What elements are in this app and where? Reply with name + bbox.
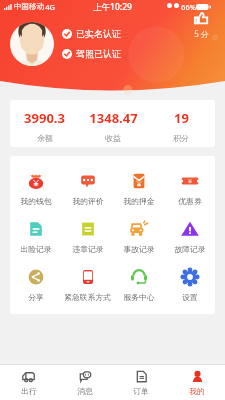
staticText: 分享 bbox=[28, 292, 44, 302]
button[interactable]: 分享 bbox=[10, 260, 62, 308]
button[interactable]: 评分 bbox=[194, 12, 209, 39]
button[interactable]: 1348.47 bbox=[79, 100, 147, 147]
staticText: 服务中心 bbox=[123, 292, 155, 302]
button[interactable]: 我的押金 bbox=[113, 164, 164, 212]
staticText: 66% bbox=[181, 2, 196, 12]
button[interactable]: 紧急联系方式 bbox=[62, 260, 113, 308]
staticText: 积分 bbox=[173, 133, 189, 143]
staticText: 订单 bbox=[133, 386, 149, 396]
button[interactable]: 出行 bbox=[0, 365, 57, 400]
staticText: 设置 bbox=[182, 292, 198, 302]
staticText: 我的钱包 bbox=[20, 196, 52, 206]
staticText: 驾照已认证 bbox=[76, 48, 121, 59]
button[interactable]: 违章记录 bbox=[62, 212, 113, 260]
staticText: 已实名认证 bbox=[76, 28, 121, 39]
button[interactable]: 我的钱包 bbox=[10, 164, 62, 212]
staticText: 我的 bbox=[189, 386, 205, 396]
button[interactable]: 我的评价 bbox=[62, 164, 113, 212]
staticText: 5 分 bbox=[194, 28, 209, 39]
button[interactable]: 事故记录 bbox=[113, 212, 164, 260]
button[interactable]: 订单 bbox=[113, 365, 169, 400]
staticText: 违章记录 bbox=[72, 244, 104, 254]
staticText: 事故记录 bbox=[123, 244, 155, 254]
button[interactable]: 服务中心 bbox=[113, 260, 164, 308]
button[interactable]: 我的 bbox=[169, 365, 225, 400]
staticText: 优惠券 bbox=[178, 196, 202, 206]
button[interactable]: 头像 bbox=[10, 22, 54, 66]
staticText: 4G bbox=[45, 2, 55, 12]
staticText: 余额 bbox=[37, 133, 53, 143]
staticText: 上午10:29 bbox=[93, 1, 132, 13]
staticText: 1348.47 bbox=[89, 109, 138, 127]
staticText: 我的评价 bbox=[72, 196, 104, 206]
staticText: 收益 bbox=[105, 133, 121, 143]
staticText: 中国移动 bbox=[14, 2, 44, 11]
staticText: 故障记录 bbox=[174, 244, 206, 254]
button[interactable]: 出险记录 bbox=[10, 212, 62, 260]
staticText: 3990.3 bbox=[24, 109, 65, 127]
button[interactable]: 19 bbox=[147, 100, 215, 147]
button[interactable]: 故障记录 bbox=[164, 212, 215, 260]
staticText: 我的押金 bbox=[123, 196, 155, 206]
staticText: 紧急联系方式 bbox=[64, 292, 111, 302]
button[interactable]: 消息 bbox=[57, 365, 113, 400]
button[interactable]: 优惠券 bbox=[164, 164, 215, 212]
staticText: 出险记录 bbox=[20, 244, 52, 254]
button[interactable]: 3990.3 bbox=[10, 100, 79, 147]
staticText: 19 bbox=[174, 109, 189, 127]
staticText: 出行 bbox=[21, 386, 37, 396]
staticText: 消息 bbox=[77, 386, 93, 396]
button[interactable]: 设置 bbox=[164, 260, 215, 308]
